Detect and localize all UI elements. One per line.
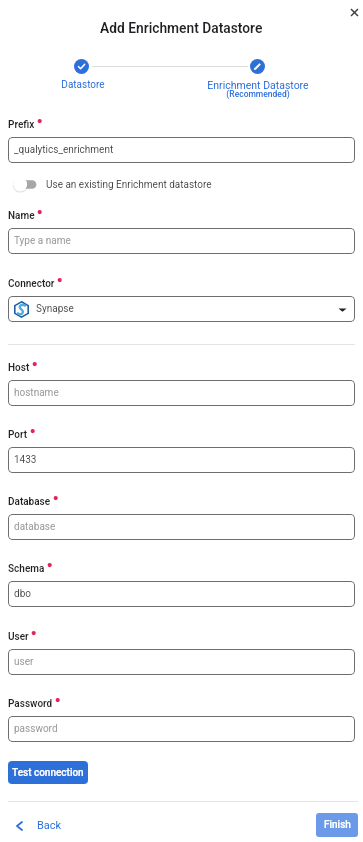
staticText: (Recommended) — [198, 89, 318, 99]
button[interactable]: 1433 — [8, 447, 355, 473]
staticText: Port — [8, 429, 28, 441]
staticText: Type a name — [14, 235, 347, 247]
staticText: Finish — [324, 819, 351, 831]
staticText: Add Enrichment Datastore — [100, 20, 263, 36]
staticText: Use an existing Enrichment datastore — [46, 179, 212, 191]
staticText: Schema — [8, 563, 45, 575]
button[interactable]: dbo — [8, 581, 355, 607]
button[interactable]: Type a name — [8, 228, 355, 254]
button[interactable]: Synapse — [8, 296, 355, 322]
button[interactable]: Close — [344, 2, 363, 22]
staticText: Synapse — [36, 303, 338, 315]
button[interactable]: Datastore step — [74, 59, 89, 74]
staticText: Datastore — [52, 79, 114, 91]
staticText: user — [14, 656, 347, 668]
staticText: Host — [8, 362, 30, 374]
staticText: User — [8, 631, 29, 643]
staticText: Prefix — [8, 119, 35, 131]
button[interactable]: Use an existing Enrichment datastore — [12, 176, 212, 194]
button[interactable]: user — [8, 649, 355, 675]
staticText: Database — [8, 496, 51, 508]
button[interactable]: _qualytics_enrichment — [8, 137, 355, 163]
staticText: Back — [37, 819, 62, 832]
button[interactable]: hostname — [8, 380, 355, 406]
staticText: dbo — [14, 588, 347, 600]
staticText: Connector — [8, 278, 55, 290]
button[interactable]: Enrichment Datastore step — [250, 59, 265, 74]
staticText: hostname — [14, 387, 347, 399]
staticText: Password — [8, 698, 53, 710]
staticText: Name — [8, 210, 35, 222]
staticText: Enrichment Datastore — [198, 79, 318, 91]
button[interactable]: Finish — [316, 813, 358, 837]
staticText: Test connection — [12, 767, 84, 779]
staticText: database — [14, 521, 347, 533]
staticText: password — [14, 723, 347, 735]
button[interactable]: Back — [13, 815, 66, 836]
button[interactable]: password — [8, 716, 355, 742]
button[interactable]: Test connection — [8, 761, 88, 784]
button[interactable]: database — [8, 514, 355, 540]
staticText: 1433 — [14, 454, 347, 466]
staticText: _qualytics_enrichment — [14, 144, 347, 156]
